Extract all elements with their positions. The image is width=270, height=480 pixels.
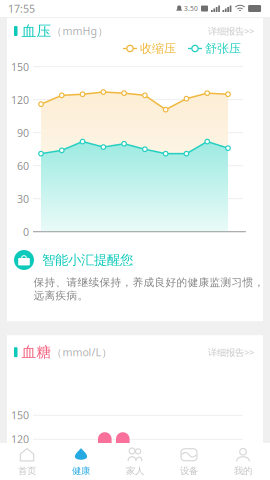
staticText: 血压 xyxy=(21,22,51,40)
button[interactable]: 详细报告>> xyxy=(208,22,259,40)
button[interactable]: 设备 xyxy=(162,440,216,480)
staticText: 舒张压 xyxy=(205,41,241,56)
staticText: 60 xyxy=(17,159,29,173)
staticText: （mmHg） xyxy=(51,24,108,38)
staticText: 首页 xyxy=(18,465,36,477)
staticText: 3.50 xyxy=(184,4,198,13)
staticText: 详细报告>> xyxy=(208,346,254,358)
staticText: 智能小汇提醒您 xyxy=(42,252,133,268)
staticText: 设备 xyxy=(180,465,198,477)
staticText: 健康 xyxy=(72,465,90,477)
button[interactable]: 首页 xyxy=(0,440,54,480)
staticText: 家人 xyxy=(126,465,144,477)
button[interactable]: 我的 xyxy=(216,440,270,480)
staticText: 90 xyxy=(17,126,29,140)
staticText: 120 xyxy=(11,432,29,446)
staticText: 150 xyxy=(11,408,29,422)
staticText: 17:55 xyxy=(8,1,35,16)
staticText: 150 xyxy=(11,60,29,74)
staticText: 我的 xyxy=(234,465,252,477)
staticText: （mmol/L） xyxy=(51,345,112,359)
button[interactable]: 健康 xyxy=(54,440,108,480)
staticText: 120 xyxy=(11,93,29,107)
staticText: 详细报告>> xyxy=(208,25,254,37)
staticText: 收缩压 xyxy=(140,41,176,56)
staticText: 0 xyxy=(23,225,29,239)
staticText: 保持、请继续保持，养成良好的健康监测习惯，远离疾病。 xyxy=(33,276,264,302)
staticText: 30 xyxy=(17,192,29,206)
staticText: 血糖 xyxy=(21,343,51,361)
button[interactable]: 详细报告>> xyxy=(208,343,259,361)
button[interactable]: 家人 xyxy=(108,440,162,480)
